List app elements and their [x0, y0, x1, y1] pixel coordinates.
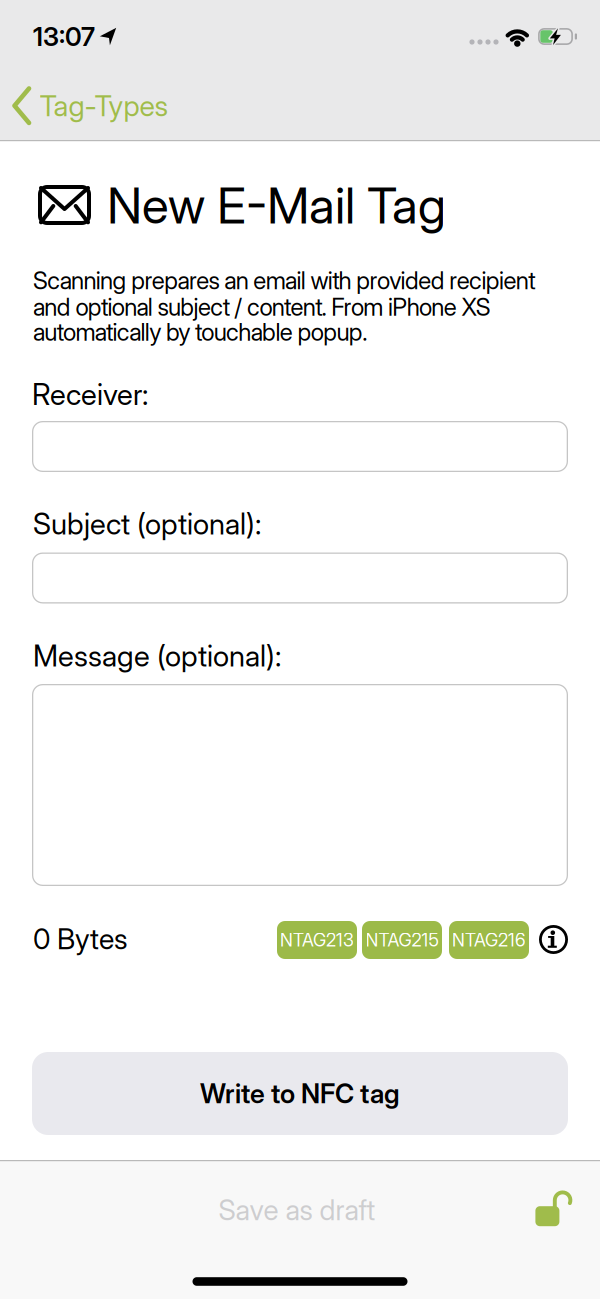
staticText: Scanning prepares an email with provided…	[33, 266, 535, 295]
button[interactable]: Info	[533, 919, 573, 959]
button[interactable]: Write to NFC tag	[32, 1052, 568, 1135]
staticText: Subject (optional):	[33, 506, 261, 542]
button[interactable]: NTAG215	[362, 921, 442, 959]
staticText: and optional subject / content. From iPh…	[33, 292, 491, 321]
button[interactable]: NTAG213	[277, 921, 357, 959]
button[interactable]: Save as draft	[147, 1180, 447, 1240]
staticText: Tag-Types	[39, 89, 168, 123]
staticText: 0 Bytes	[33, 922, 128, 956]
staticText: Write to NFC tag	[200, 1077, 400, 1110]
staticText: NTAG213	[280, 929, 354, 951]
button[interactable]: NTAG216	[449, 921, 529, 959]
staticText: New E-Mail Tag	[107, 176, 446, 235]
button[interactable]: Message	[32, 684, 568, 886]
button[interactable]: Back	[13, 82, 199, 130]
button[interactable]: Unlock	[530, 1186, 574, 1230]
staticText: 13:07	[33, 21, 95, 52]
staticText: NTAG215	[365, 929, 438, 951]
button[interactable]: Subject	[32, 552, 568, 603]
staticText: NTAG216	[452, 929, 526, 951]
staticText: Receiver:	[32, 377, 148, 412]
staticText: Message (optional):	[33, 638, 281, 674]
staticText: automatically by touchable popup.	[33, 317, 367, 346]
staticText: Save as draft	[218, 1193, 375, 1227]
button[interactable]: Receiver	[32, 421, 568, 472]
